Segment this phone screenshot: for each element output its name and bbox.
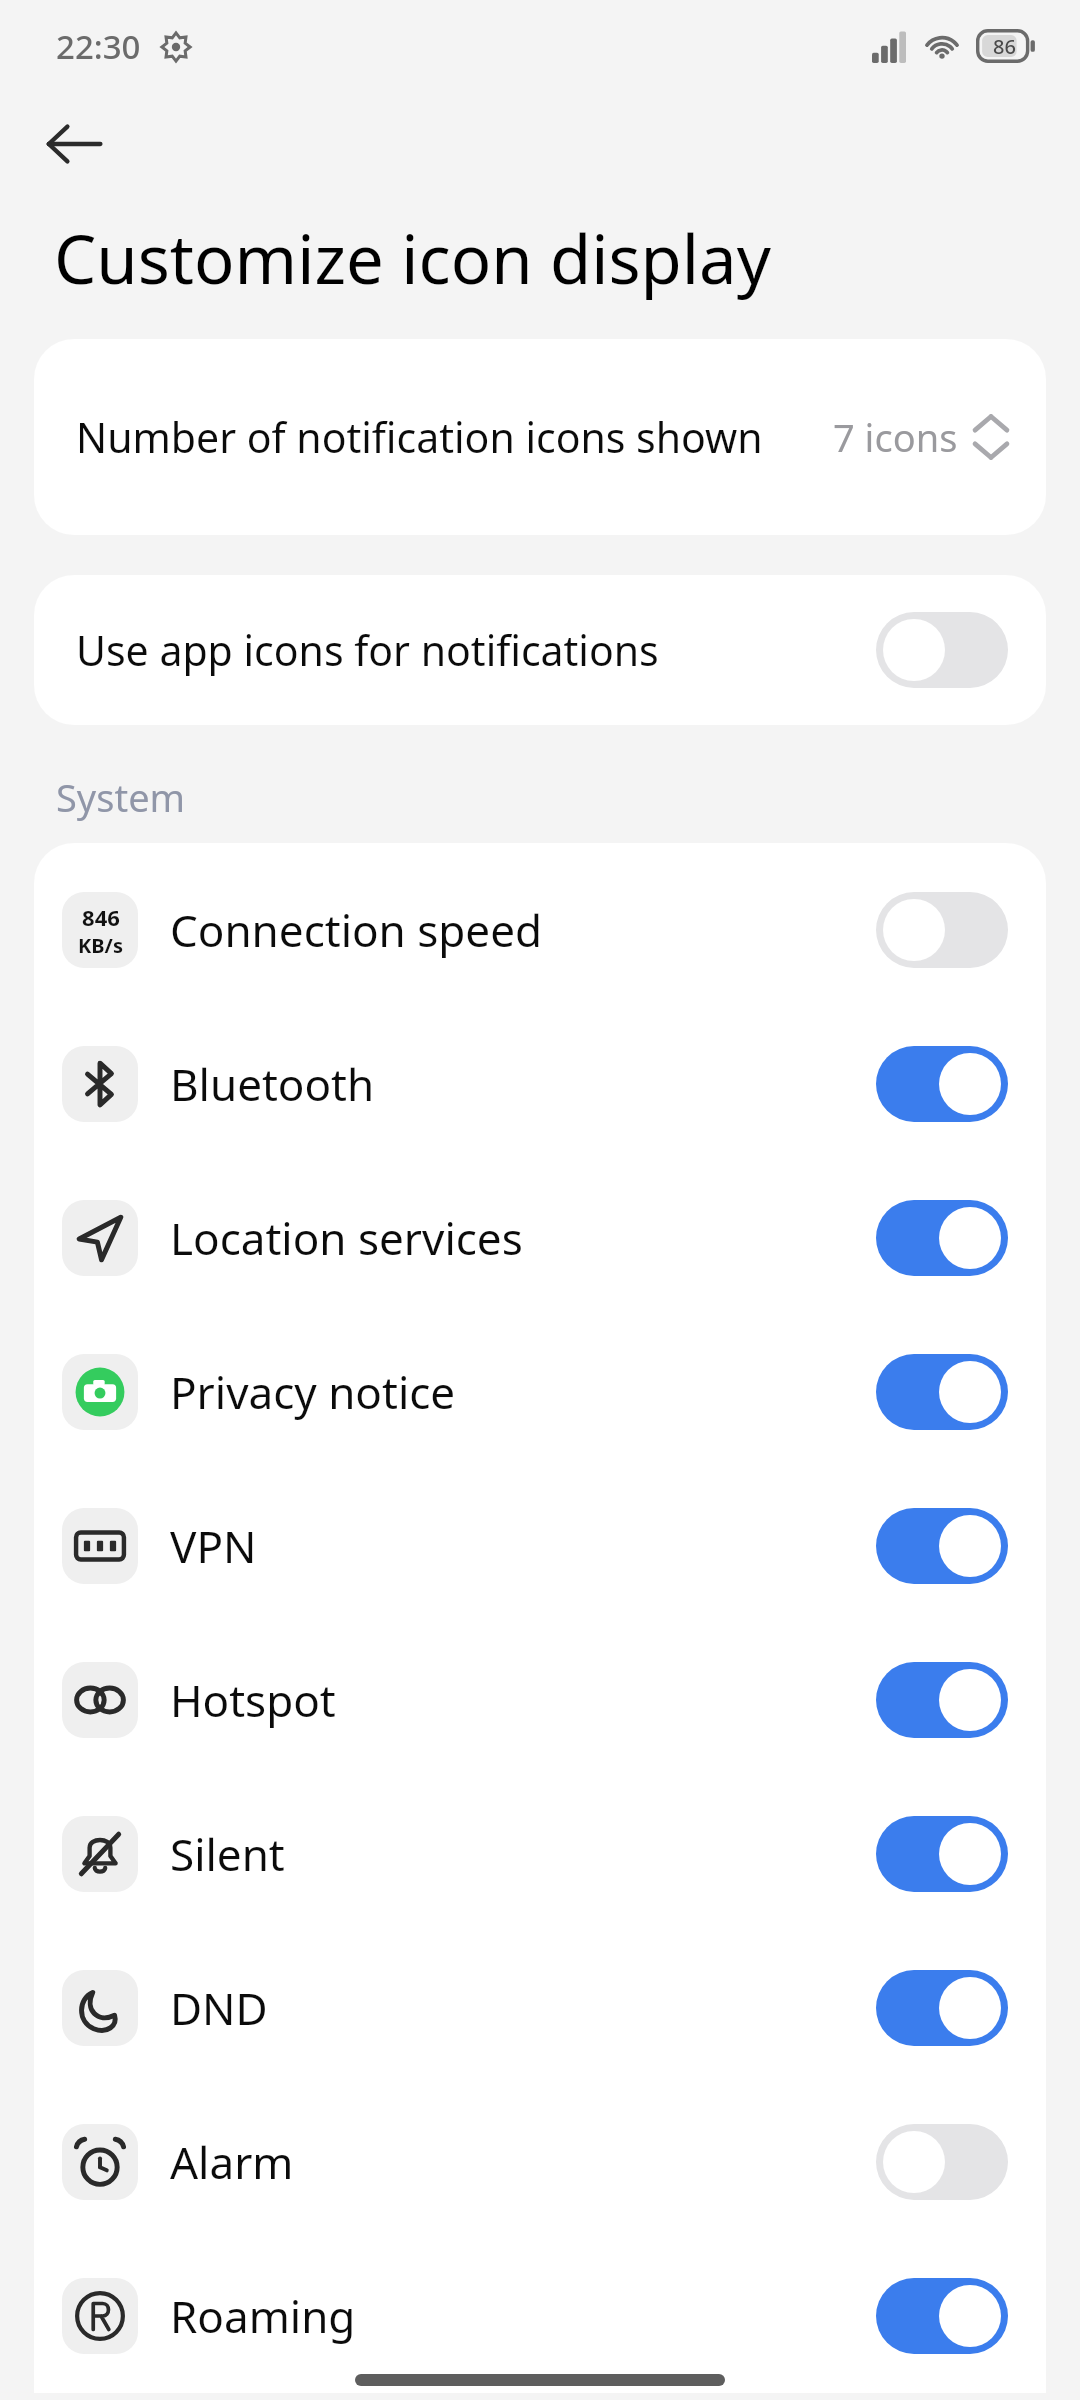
button[interactable]: VPN	[34, 1469, 1046, 1623]
button[interactable]: 846	[34, 853, 1046, 1007]
staticText: 7 icons	[833, 411, 958, 463]
staticText: 86	[993, 33, 1016, 60]
staticText: Privacy notice	[170, 1362, 876, 1422]
button[interactable]: On	[876, 1508, 1008, 1584]
staticText: Bluetooth	[170, 1054, 876, 1114]
staticText: Number of notification icons shown	[76, 409, 763, 465]
button[interactable]: Bluetooth	[34, 1007, 1046, 1161]
button[interactable]: Back	[26, 96, 122, 192]
button[interactable]: On	[876, 1354, 1008, 1430]
staticText: Alarm	[170, 2132, 876, 2192]
button[interactable]: On	[876, 1200, 1008, 1276]
button[interactable]: On	[876, 2278, 1008, 2354]
staticText: Hotspot	[170, 1670, 876, 1730]
staticText: KB/s	[78, 932, 123, 959]
staticText: Silent	[170, 1824, 876, 1884]
button[interactable]: On	[876, 1970, 1008, 2046]
button[interactable]: DND	[34, 1931, 1046, 2085]
staticText: VPN	[170, 1516, 876, 1576]
staticText: Roaming	[170, 2286, 876, 2346]
button[interactable]: Alarm	[34, 2085, 1046, 2239]
button[interactable]: On	[876, 1046, 1008, 1122]
button[interactable]: Privacy notice	[34, 1315, 1046, 1469]
staticText: Use app icons for notifications	[76, 622, 876, 678]
staticText: System	[56, 771, 186, 823]
staticText: Customize icon display	[54, 212, 771, 303]
staticText: Location services	[170, 1208, 876, 1268]
staticText: Connection speed	[170, 900, 876, 960]
button[interactable]: Roaming	[34, 2239, 1046, 2393]
button[interactable]: Hotspot	[34, 1623, 1046, 1777]
button[interactable]: On	[876, 1816, 1008, 1892]
staticText: 846	[82, 902, 120, 932]
button[interactable]: On	[876, 1662, 1008, 1738]
staticText: DND	[170, 1978, 876, 2038]
button[interactable]: Number of notification icons shown	[34, 339, 1046, 535]
staticText: 22:30	[56, 24, 141, 69]
button[interactable]: Silent	[34, 1777, 1046, 1931]
button[interactable]: Location services	[34, 1161, 1046, 1315]
button[interactable]: Use app icons for notifications	[34, 575, 1046, 725]
button[interactable]: Off	[876, 612, 1008, 688]
button[interactable]: Off	[876, 892, 1008, 968]
button[interactable]: Off	[876, 2124, 1008, 2200]
